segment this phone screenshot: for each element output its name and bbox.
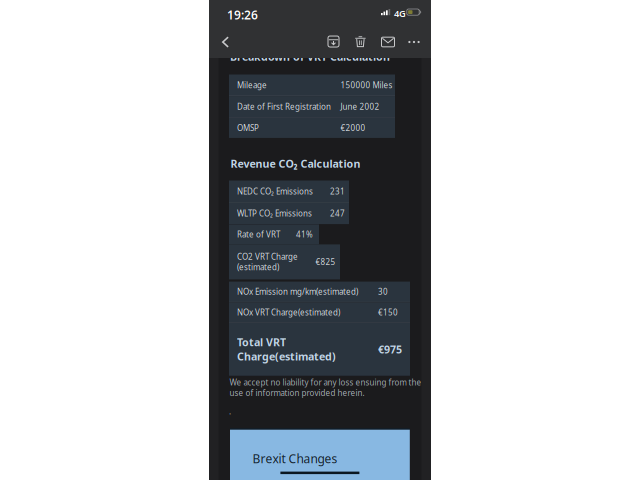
- staticText: 150000 Miles: [340, 80, 392, 90]
- staticText: Breakdown of VRT Calculation: [230, 49, 390, 64]
- staticText: €825: [315, 257, 335, 267]
- staticText: 231: [330, 186, 345, 197]
- staticText: Mileage: [237, 80, 267, 90]
- staticText: NOx Emission mg/km(estimated): [237, 286, 358, 297]
- staticText: 4G: [394, 7, 406, 20]
- staticText: 41%: [296, 229, 313, 240]
- staticText: 19:26: [227, 7, 258, 23]
- staticText: NOx VRT Charge(estimated): [237, 307, 340, 318]
- staticText: Rate of VRT: [237, 229, 280, 240]
- staticText: Total VRT Charge(estimated): [237, 335, 336, 363]
- staticText: CO2 VRT Charge (estimated): [237, 251, 298, 272]
- button[interactable]: Back: [214, 31, 236, 53]
- staticText: WLTP CO₂ Emissions: [237, 208, 312, 219]
- staticText: €2000: [340, 122, 365, 133]
- button[interactable]: Archive: [322, 30, 344, 52]
- button[interactable]: More options: [403, 31, 425, 53]
- staticText: Brexit Changes: [252, 451, 337, 466]
- staticText: June 2002: [340, 101, 379, 112]
- staticText: €975: [378, 342, 402, 356]
- button[interactable]: Brexit Changes: [252, 452, 352, 466]
- staticText: 30: [378, 286, 388, 297]
- staticText: We accept no liability for any loss ensu…: [229, 377, 421, 398]
- button[interactable]: Mark as unread: [377, 31, 399, 53]
- staticText: OMSP: [237, 122, 259, 133]
- staticText: Date of First Registration: [237, 101, 331, 112]
- staticText: .: [229, 406, 231, 417]
- staticText: €150: [378, 307, 398, 318]
- staticText: Revenue CO₂ Calculation: [230, 156, 360, 171]
- staticText: 247: [330, 208, 345, 219]
- staticText: NEDC CO₂ Emissions: [237, 186, 313, 197]
- button[interactable]: Delete: [349, 30, 371, 52]
